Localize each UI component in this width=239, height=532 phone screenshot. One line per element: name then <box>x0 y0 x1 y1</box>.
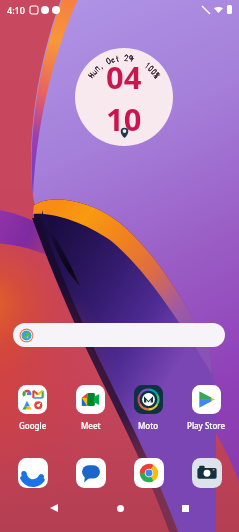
button[interactable]: Moto <box>121 385 176 431</box>
button[interactable]: Chrome <box>121 458 176 488</box>
button[interactable]: Back <box>42 496 66 520</box>
button[interactable]: Google <box>5 385 60 431</box>
button[interactable]: Camera <box>179 458 234 488</box>
staticText: Play Store <box>187 420 226 431</box>
staticText: Moto <box>138 420 159 431</box>
staticText: 04 <box>106 56 142 98</box>
staticText: 4:10 <box>7 4 25 16</box>
button[interactable]: Search <box>13 323 225 347</box>
button[interactable]: Play Store <box>179 385 234 431</box>
staticText: 10 <box>106 98 142 140</box>
button[interactable]: Messages <box>63 458 118 488</box>
button[interactable]: Meet <box>63 385 118 431</box>
staticText: Google <box>19 420 47 431</box>
button[interactable]: Home <box>108 496 132 520</box>
button[interactable]: Phone <box>5 458 60 488</box>
button[interactable]: Recent apps <box>173 496 197 520</box>
button[interactable]: 04 <box>75 48 173 146</box>
staticText: Meet <box>81 420 101 431</box>
